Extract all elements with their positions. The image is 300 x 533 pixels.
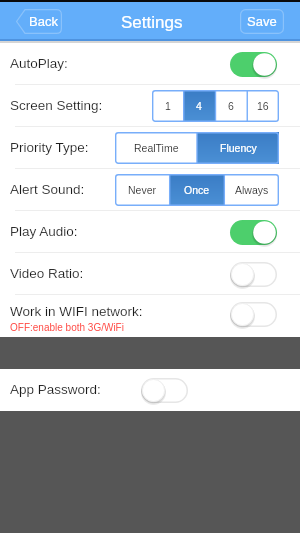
button[interactable]: Switch on	[230, 52, 277, 77]
staticText: AutoPlay:	[10, 56, 68, 71]
button[interactable]: Never	[115, 174, 169, 206]
staticText: OFF:enable both 3G/WiFi	[10, 322, 124, 333]
button[interactable]: 4	[183, 90, 215, 122]
staticText: Play Audio:	[10, 224, 78, 239]
button[interactable]: 16	[247, 90, 279, 122]
staticText: Never	[128, 184, 157, 196]
staticText: Video Ratio:	[10, 266, 84, 281]
staticText: 6	[228, 100, 234, 112]
button[interactable]: 1	[152, 90, 183, 122]
staticText: RealTime	[134, 142, 179, 154]
staticText: Fluency	[220, 142, 257, 154]
button[interactable]: Once	[169, 174, 224, 206]
button[interactable]: Switch on	[230, 220, 277, 245]
staticText: Screen Setting:	[10, 98, 103, 113]
button[interactable]: Fluency	[197, 132, 279, 164]
staticText: 1	[165, 100, 171, 112]
staticText: App Password:	[10, 382, 101, 397]
staticText: Priority Type:	[10, 140, 89, 155]
button[interactable]: Switch off	[230, 262, 277, 287]
button[interactable]: 6	[215, 90, 247, 122]
staticText: Save	[247, 14, 277, 29]
staticText: Once	[184, 184, 210, 196]
button[interactable]: Save	[240, 9, 284, 34]
button[interactable]: Back	[16, 9, 62, 34]
button[interactable]: Switch off	[141, 378, 188, 403]
staticText: Work in WIFI network:	[10, 304, 143, 319]
staticText: 16	[257, 100, 269, 112]
button[interactable]: RealTime	[115, 132, 197, 164]
button[interactable]: Always	[224, 174, 279, 206]
staticText: 4	[196, 100, 202, 112]
staticText: Alert Sound:	[10, 182, 85, 197]
staticText: Always	[235, 184, 269, 196]
staticText: Settings	[121, 13, 183, 32]
staticText: Back	[29, 14, 58, 29]
button[interactable]: Switch off	[230, 302, 277, 327]
